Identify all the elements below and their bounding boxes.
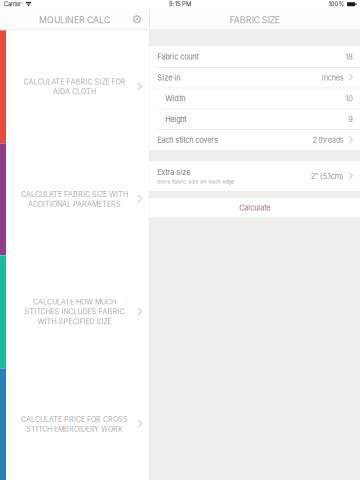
staticText: Extra size xyxy=(157,168,190,177)
button[interactable]: Width xyxy=(149,88,360,109)
staticText: WITH SPECIFIED SIZE xyxy=(37,317,111,326)
staticText: 2" (5.1cm) xyxy=(311,172,344,181)
staticText: CALCULATE FABRIC SIZE FOR xyxy=(23,78,125,86)
staticText: 18 xyxy=(345,52,353,61)
button[interactable]: Fabric count xyxy=(149,46,360,67)
staticText: 9 xyxy=(348,115,353,124)
staticText: 10 xyxy=(345,94,353,103)
staticText: Carrier xyxy=(4,1,21,8)
staticText: MOULINER CALC xyxy=(39,15,110,25)
staticText: Each stitch covers xyxy=(157,136,218,144)
button[interactable]: Height xyxy=(149,109,360,129)
staticText: 100% xyxy=(328,1,344,8)
staticText: Inches xyxy=(322,73,344,82)
button[interactable]: Each stitch covers xyxy=(149,130,360,150)
button[interactable]: CALCULATE PRICE FOR CROSS xyxy=(0,368,149,480)
staticText: Width xyxy=(165,94,185,103)
staticText: Calculate xyxy=(239,203,270,212)
staticText: Fabric count xyxy=(157,52,198,61)
staticText: STITCH EMBROIDERY WORK xyxy=(26,425,123,433)
staticText: CALCULATE HOW MUCH xyxy=(33,298,116,306)
button[interactable]: CALCULATE FABRIC SIZE WITH xyxy=(0,143,149,255)
button[interactable]: CALCULATE HOW MUCH xyxy=(0,255,149,368)
staticText: Height xyxy=(165,115,186,124)
staticText: AIDA CLOTH xyxy=(53,87,96,96)
button[interactable]: Size in xyxy=(149,68,360,88)
button[interactable]: CALCULATE FABRIC SIZE FOR xyxy=(0,30,149,143)
staticText: CALCULATE PRICE FOR CROSS xyxy=(21,415,128,424)
button[interactable]: Extra size xyxy=(149,161,360,191)
button[interactable]: Settings xyxy=(125,9,149,30)
staticText: extra fabric size on each edge xyxy=(157,178,234,185)
staticText: FABRIC SIZE xyxy=(230,15,280,25)
staticText: 2 threads xyxy=(313,136,344,144)
staticText: 9:15 PM xyxy=(169,1,191,8)
staticText: ADDITIONAL PARAMETERS xyxy=(28,200,121,208)
staticText: CALCULATE FABRIC SIZE WITH xyxy=(21,190,128,199)
staticText: STITCHES INCLUDES FABRIC xyxy=(24,307,124,316)
button[interactable]: Calculate xyxy=(149,198,360,217)
staticText: Size in xyxy=(157,73,180,82)
